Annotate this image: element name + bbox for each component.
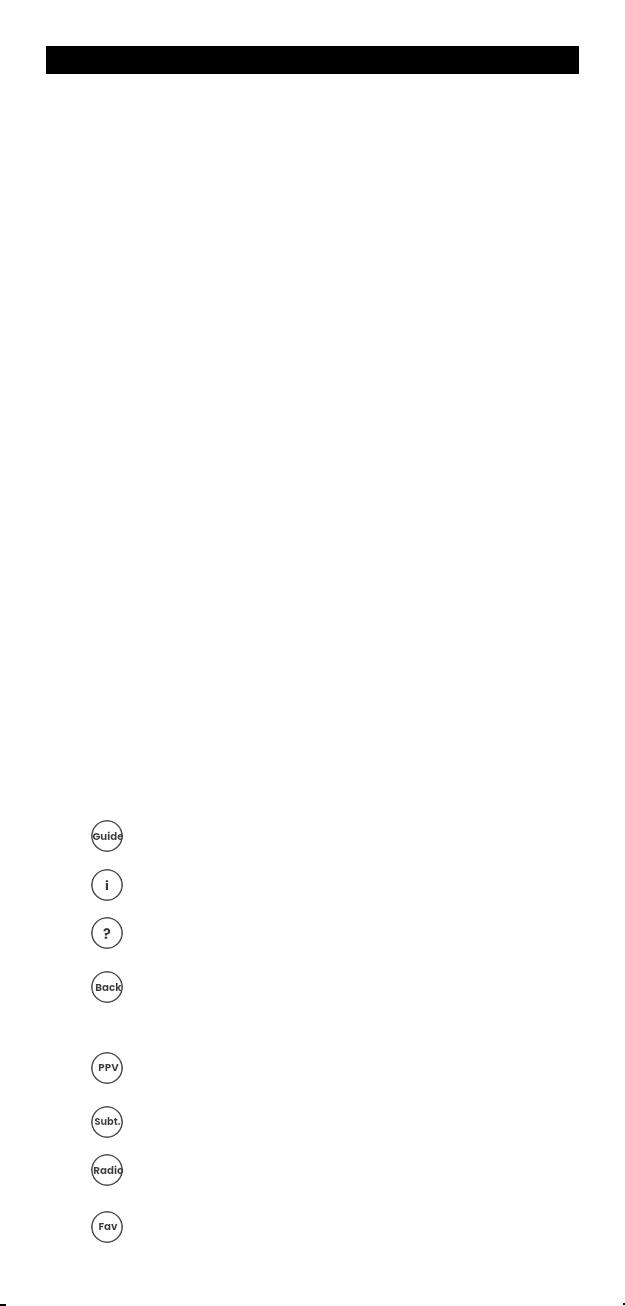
button[interactable]: Guide bbox=[91, 820, 123, 852]
button[interactable]: Fav bbox=[91, 1211, 123, 1243]
staticText: ? bbox=[103, 924, 111, 944]
button[interactable]: Back bbox=[91, 971, 123, 1003]
staticText: Radio bbox=[93, 1163, 123, 1177]
staticText: i bbox=[105, 876, 109, 894]
staticText: Fav bbox=[98, 1219, 118, 1233]
button[interactable]: PPV bbox=[91, 1052, 123, 1084]
staticText: Subt. bbox=[94, 1115, 121, 1129]
staticText: PPV bbox=[98, 1060, 119, 1074]
staticText: Back bbox=[95, 980, 122, 994]
button[interactable]: Radio bbox=[91, 1154, 123, 1186]
button[interactable]: Subt. bbox=[91, 1106, 123, 1138]
button[interactable]: Help bbox=[91, 917, 123, 949]
button[interactable]: Information bbox=[91, 869, 123, 901]
staticText: Guide bbox=[92, 829, 123, 843]
